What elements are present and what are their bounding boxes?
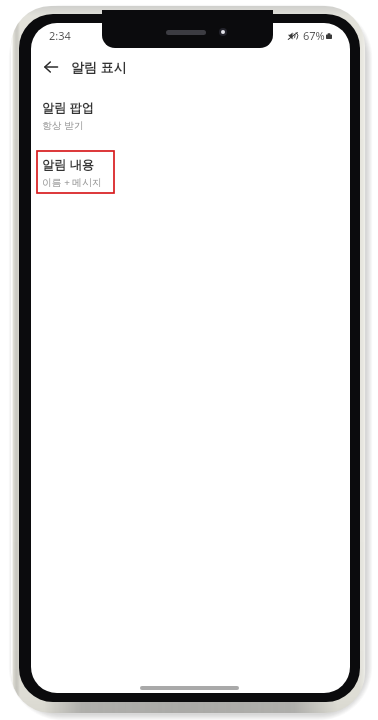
staticText: 알림 내용 — [42, 156, 94, 173]
button[interactable]: 알림 내용 — [31, 156, 350, 189]
staticText: 항상 받기 — [42, 119, 84, 132]
button[interactable]: Back — [32, 50, 69, 83]
button[interactable]: 알림 팝업 — [31, 99, 350, 132]
staticText: 알림 표시 — [71, 58, 127, 76]
staticText: 67% — [303, 28, 325, 43]
staticText: 2:34 — [49, 28, 71, 43]
staticText: 이름 + 메시지 — [42, 176, 102, 189]
staticText: 알림 팝업 — [42, 99, 94, 116]
